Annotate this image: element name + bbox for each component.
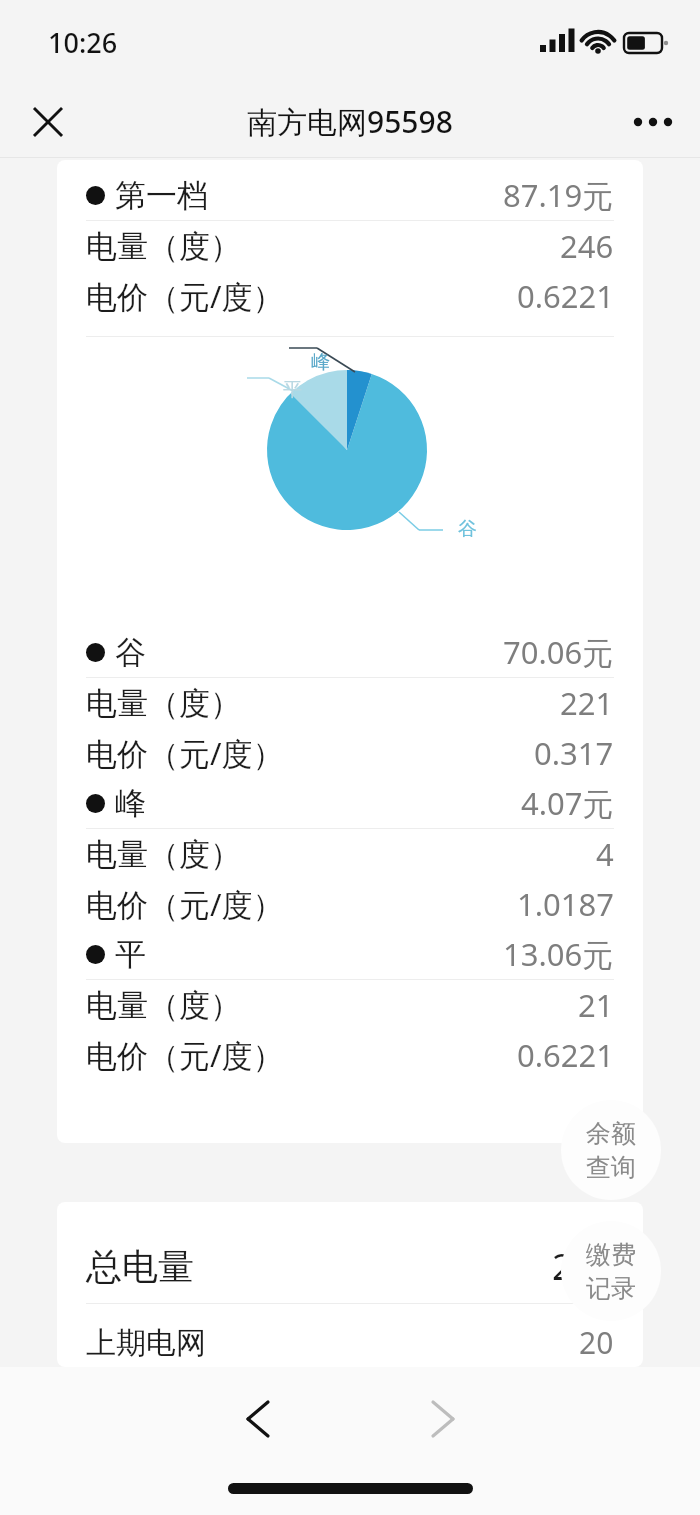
button[interactable]: 电价（元/度） [86,271,614,321]
staticText: 电价（元/度） [86,275,284,317]
staticText: 南方电网95598 [247,101,453,142]
staticText: 87.19元 [503,174,614,216]
button[interactable]: 电价（元/度） [86,728,614,778]
staticText: 0.6221 [517,1034,614,1076]
button[interactable]: More options [624,93,682,151]
button[interactable]: 电量（度） [86,980,614,1030]
staticText: 记录 [586,1273,636,1304]
staticText: 总电量 [86,1244,194,1289]
staticText: 0.6221 [517,275,614,317]
button[interactable]: Close [20,94,76,150]
button[interactable]: 电量（度） [86,678,614,728]
staticText: 4 [596,833,614,875]
staticText: 221 [560,682,614,724]
staticText: 平 [115,935,146,974]
staticText: 峰 [115,784,146,823]
staticText: 21 [578,984,614,1026]
button[interactable]: 峰 [86,778,614,828]
staticText: 峰 [311,350,330,374]
button[interactable]: 余额查询 [561,1100,661,1200]
button[interactable]: 电价（元/度） [86,1030,614,1080]
staticText: 电价（元/度） [86,732,284,774]
staticText: 246 [560,225,614,267]
staticText: 20 [579,1322,614,1363]
staticText: 1.0187 [517,883,614,925]
staticText: 平 [283,378,302,402]
staticText: 10:26 [48,24,118,61]
staticText: 电量（度） [86,684,241,723]
staticText: 4.07元 [521,782,614,824]
staticText: 电量（度） [86,986,241,1025]
staticText: 查询 [586,1152,636,1183]
staticText: 70.06元 [503,631,614,673]
button[interactable]: Back [228,1389,288,1449]
staticText: 上期电网 [86,1324,206,1362]
staticText: 谷 [458,517,477,541]
staticText: 电价（元/度） [86,1034,284,1076]
staticText: 缴费 [586,1239,636,1270]
staticText: 240 [552,1242,614,1291]
staticText: 电量（度） [86,227,241,266]
button[interactable]: 第一档 [86,170,614,220]
button[interactable]: 电量（度） [86,221,614,271]
button[interactable]: 电量（度） [86,829,614,879]
staticText: 余额 [586,1118,636,1149]
staticText: 第一档 [115,176,208,215]
button[interactable]: 谷 [86,627,614,677]
button[interactable]: 缴费记录 [561,1221,661,1321]
button[interactable]: 总电量 [86,1230,614,1303]
staticText: 谷 [115,633,146,672]
button[interactable]: Forward [413,1389,473,1449]
staticText: 0.317 [534,732,614,774]
staticText: 13.06元 [503,933,614,975]
staticText: 电价（元/度） [86,883,284,925]
staticText: 电量（度） [86,835,241,874]
button[interactable]: 平 [86,929,614,979]
button[interactable]: 电价（元/度） [86,879,614,929]
